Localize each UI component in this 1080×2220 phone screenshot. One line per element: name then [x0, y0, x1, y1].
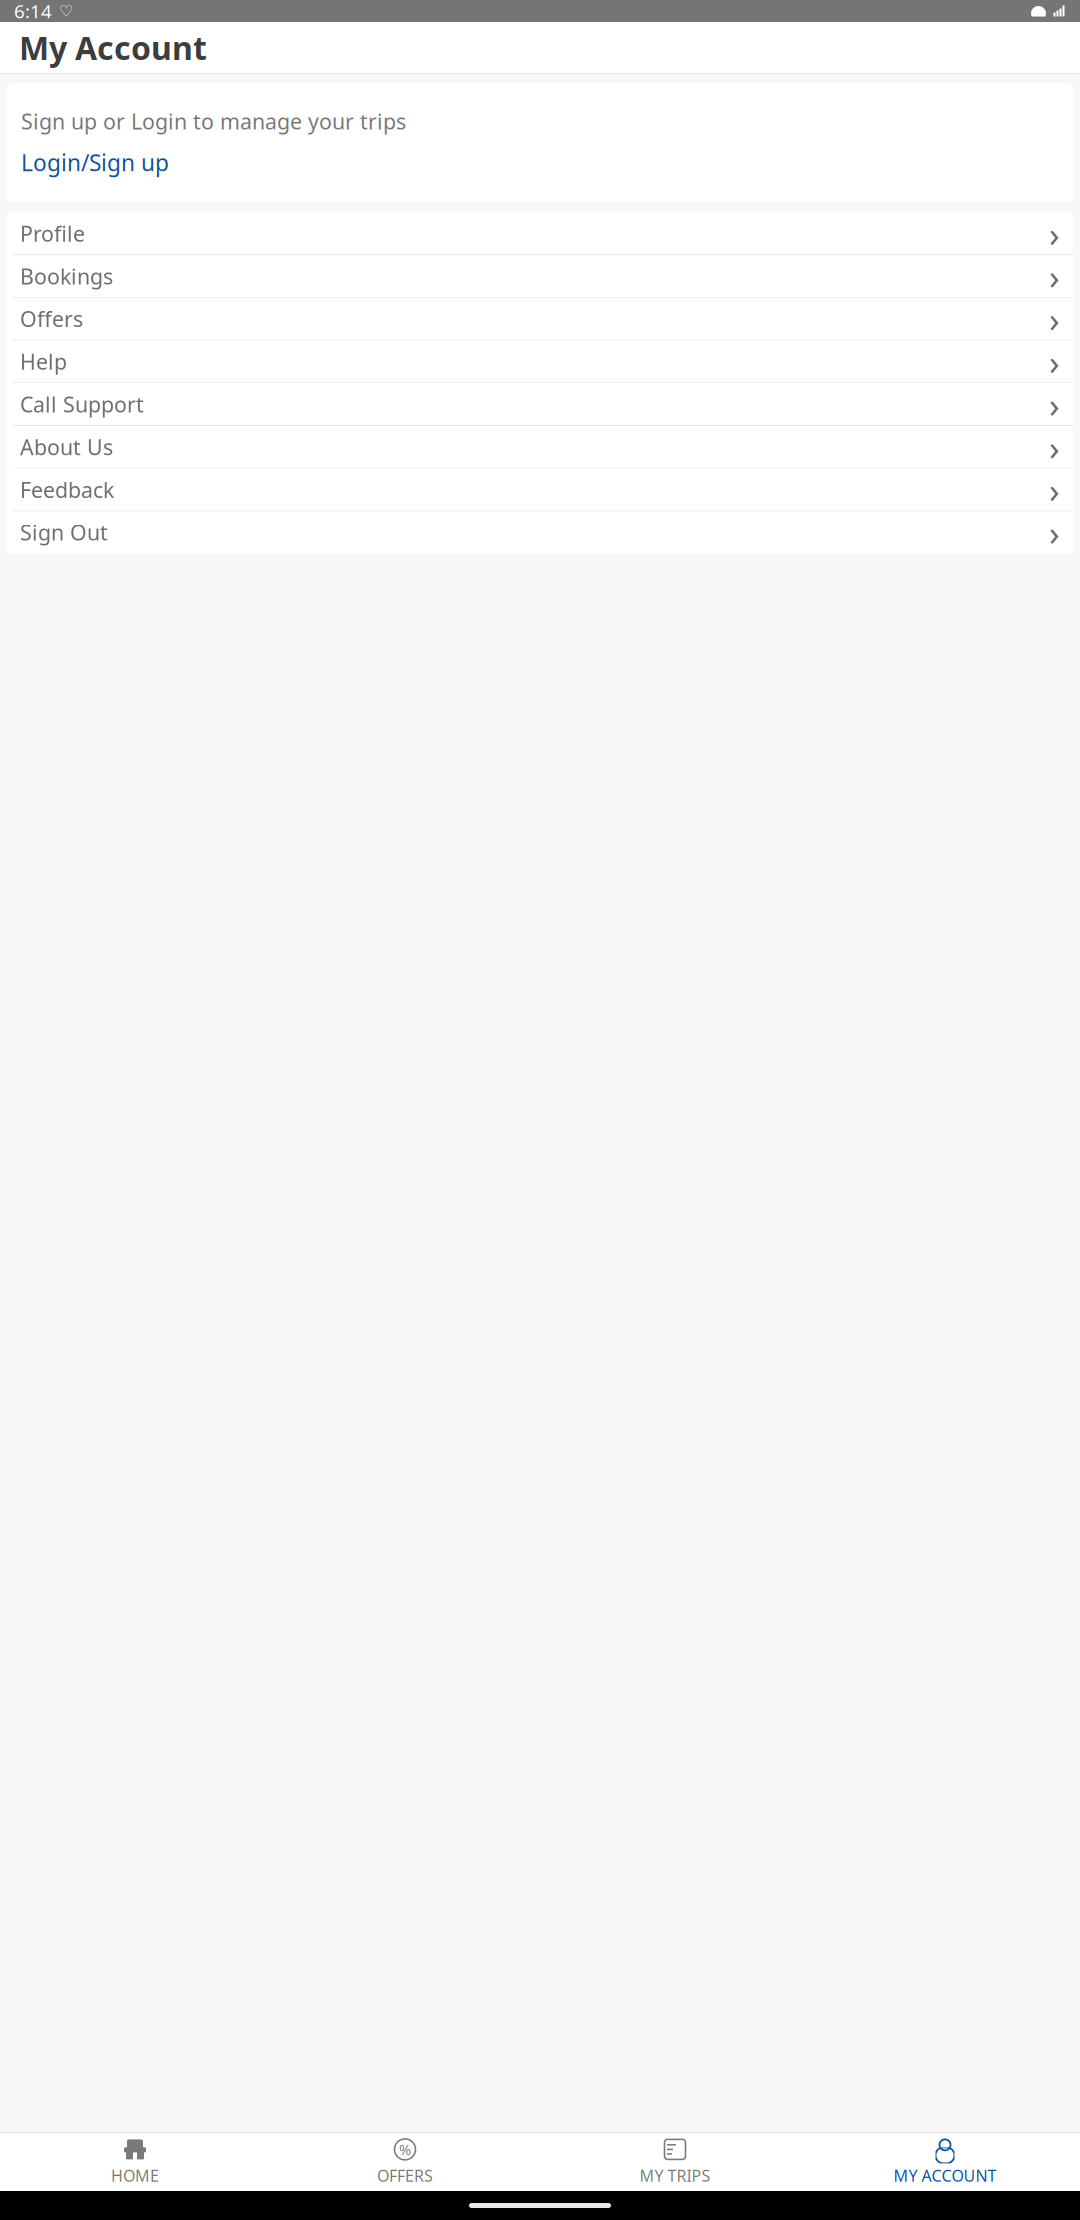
button[interactable]: MY TRIPS [540, 2130, 810, 2194]
staticText: › [1049, 210, 1060, 256]
staticText: About Us [20, 433, 113, 461]
staticText: › [1049, 467, 1060, 513]
staticText: Help [20, 347, 67, 376]
staticText: OFFERS [377, 2165, 433, 2186]
button[interactable]: HOME [0, 2130, 270, 2194]
button[interactable]: % [270, 2130, 540, 2194]
button[interactable]: Feedback [7, 469, 1073, 511]
staticText: Offers [20, 305, 83, 333]
staticText: › [1049, 253, 1060, 299]
staticText: › [1049, 296, 1060, 342]
button[interactable]: Call Support [7, 383, 1073, 426]
staticText: › [1049, 381, 1060, 427]
button[interactable]: About Us [7, 426, 1073, 469]
staticText: Profile [20, 219, 85, 248]
staticText: › [1049, 509, 1060, 555]
staticText: Bookings [20, 262, 113, 290]
staticText: 6:14 [14, 0, 52, 23]
staticText: % [399, 2140, 411, 2159]
staticText: Sign up or Login to manage your trips [21, 107, 406, 135]
staticText: › [1049, 424, 1060, 470]
staticText: ♡ [59, 2, 73, 20]
staticText: Login/Sign up [21, 147, 169, 177]
button[interactable]: MY ACCOUNT [810, 2130, 1080, 2194]
staticText: My Account [19, 26, 207, 69]
staticText: Sign Out [20, 518, 108, 546]
button[interactable]: Offers [7, 298, 1073, 340]
button[interactable]: Sign Out [7, 511, 1073, 553]
staticText: Feedback [20, 475, 114, 504]
staticText: HOME [111, 2165, 159, 2186]
staticText: › [1049, 338, 1060, 384]
button[interactable]: Profile [7, 212, 1073, 255]
button[interactable]: Help [7, 340, 1073, 383]
button[interactable]: Bookings [7, 255, 1073, 298]
staticText: Call Support [20, 390, 144, 418]
staticText: MY ACCOUNT [893, 2165, 996, 2186]
button[interactable]: Sign up or Login to manage your trips [7, 83, 1073, 201]
staticText: MY TRIPS [639, 2165, 710, 2186]
